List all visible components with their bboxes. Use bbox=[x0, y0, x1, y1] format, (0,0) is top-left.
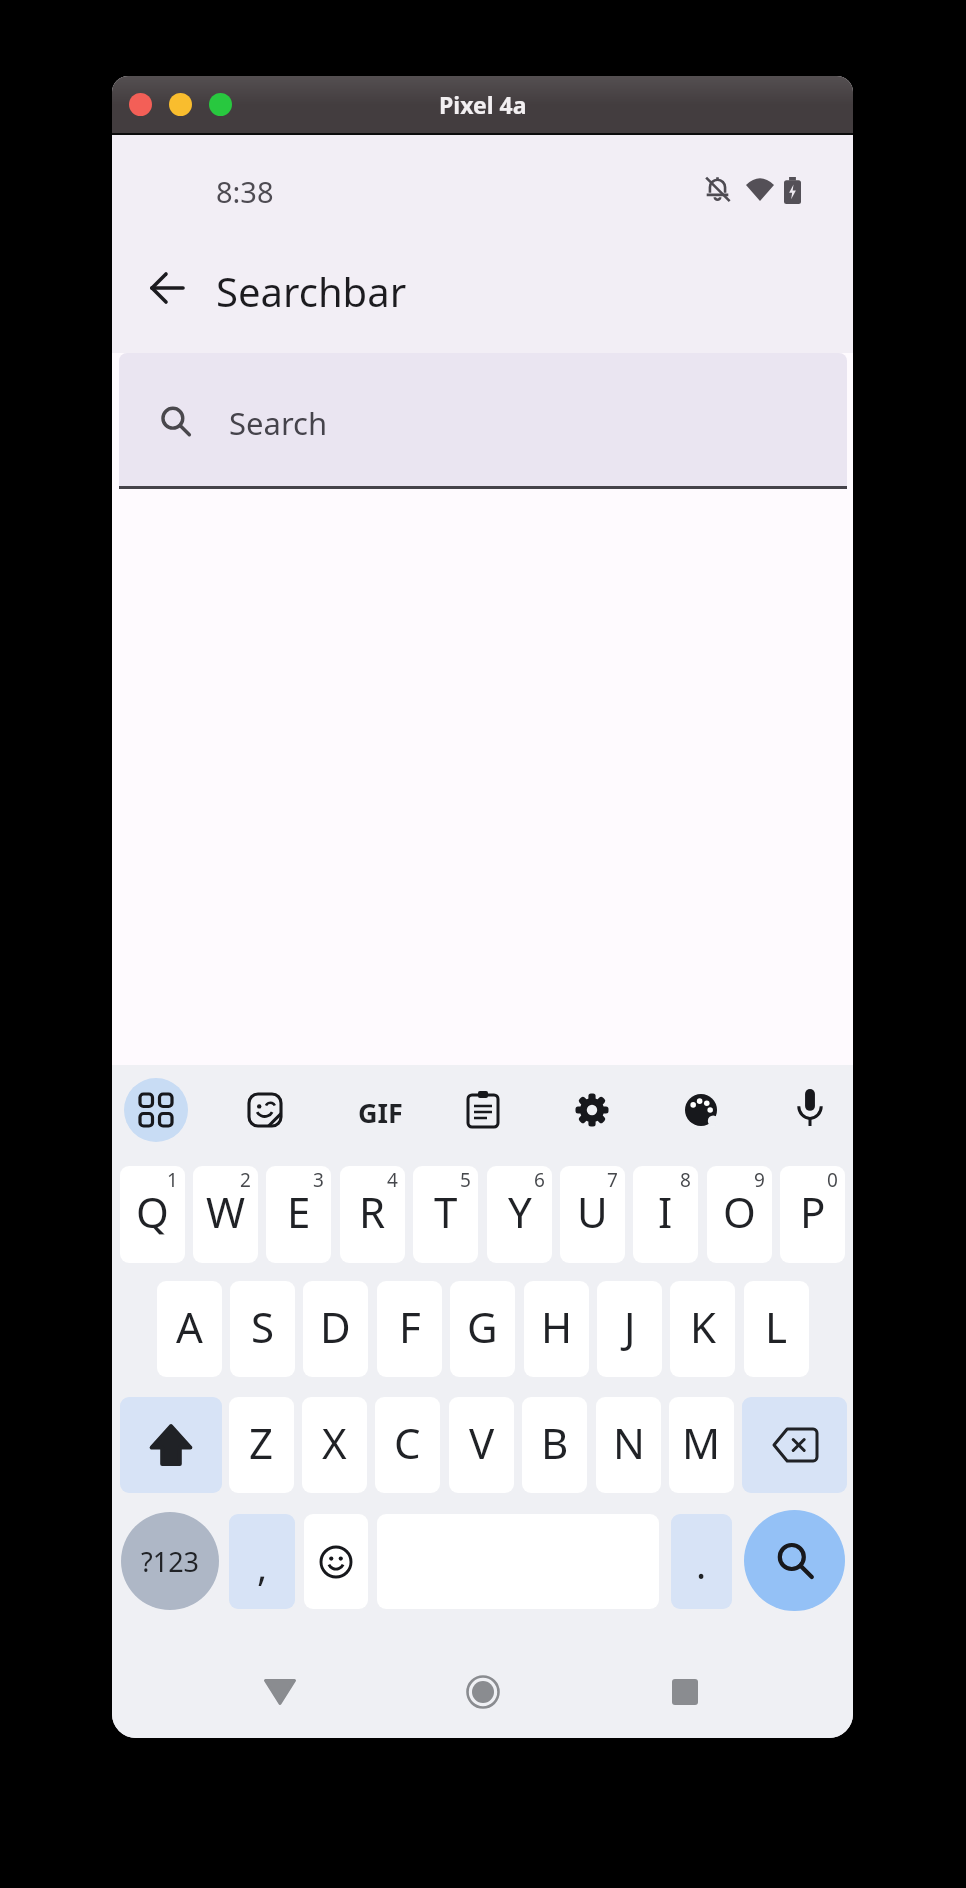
staticText: 7 bbox=[607, 1167, 618, 1193]
button[interactable]: S bbox=[230, 1281, 295, 1377]
staticText: T bbox=[434, 1183, 458, 1240]
button[interactable]: T bbox=[413, 1166, 478, 1263]
button[interactable] bbox=[169, 93, 192, 116]
button[interactable] bbox=[129, 93, 152, 116]
button[interactable] bbox=[793, 1089, 827, 1131]
button[interactable]: D bbox=[303, 1281, 368, 1377]
staticText: F bbox=[399, 1298, 421, 1355]
button[interactable] bbox=[304, 1514, 368, 1609]
button[interactable] bbox=[209, 93, 232, 116]
button[interactable]: J bbox=[597, 1281, 662, 1377]
staticText: Search bbox=[229, 402, 328, 444]
button[interactable]: ?123 bbox=[121, 1512, 219, 1610]
staticText: X bbox=[322, 1414, 347, 1471]
button[interactable]: L bbox=[744, 1281, 809, 1377]
button[interactable]: I bbox=[633, 1166, 698, 1263]
staticText: 8:38 bbox=[216, 172, 274, 211]
staticText: M bbox=[682, 1414, 721, 1471]
button[interactable]: GIF bbox=[358, 1094, 403, 1131]
staticText: ?123 bbox=[141, 1543, 200, 1580]
staticText: , bbox=[257, 1540, 268, 1592]
button[interactable]: N bbox=[596, 1397, 661, 1493]
button[interactable]: G bbox=[450, 1281, 515, 1377]
button[interactable] bbox=[672, 1679, 698, 1705]
button[interactable]: V bbox=[449, 1397, 514, 1493]
staticText: P bbox=[800, 1183, 826, 1240]
staticText: Pixel 4a bbox=[439, 89, 527, 120]
staticText: D bbox=[320, 1298, 351, 1355]
button[interactable] bbox=[466, 1675, 500, 1709]
button[interactable] bbox=[264, 1679, 296, 1705]
staticText: G bbox=[467, 1298, 498, 1355]
button[interactable]: Q bbox=[120, 1166, 185, 1263]
staticText: C bbox=[394, 1414, 421, 1471]
staticText: 2 bbox=[240, 1167, 251, 1193]
button[interactable]: K bbox=[670, 1281, 735, 1377]
button[interactable]: Z bbox=[229, 1397, 294, 1493]
staticText: K bbox=[690, 1298, 716, 1355]
button[interactable]: . bbox=[671, 1514, 732, 1609]
staticText: R bbox=[359, 1183, 386, 1240]
staticText: Y bbox=[508, 1183, 532, 1240]
staticText: 3 bbox=[313, 1167, 324, 1193]
button[interactable] bbox=[684, 1093, 718, 1127]
button[interactable] bbox=[124, 1078, 188, 1142]
button[interactable]: X bbox=[302, 1397, 367, 1493]
button[interactable]: F bbox=[377, 1281, 442, 1377]
staticText: 0 bbox=[827, 1167, 838, 1193]
button[interactable]: C bbox=[375, 1397, 440, 1493]
staticText: 4 bbox=[387, 1167, 398, 1193]
button[interactable]: W bbox=[193, 1166, 258, 1263]
button[interactable] bbox=[150, 274, 184, 302]
button[interactable]: U bbox=[560, 1166, 625, 1263]
staticText: U bbox=[577, 1183, 608, 1240]
button[interactable]: H bbox=[524, 1281, 589, 1377]
button[interactable]: P bbox=[780, 1166, 845, 1263]
staticText: Searchbar bbox=[216, 264, 407, 318]
button[interactable] bbox=[574, 1092, 610, 1128]
button[interactable]: E bbox=[266, 1166, 331, 1263]
button[interactable] bbox=[247, 1092, 283, 1128]
staticText: 8 bbox=[680, 1167, 691, 1193]
staticText: A bbox=[176, 1298, 203, 1355]
button[interactable]: A bbox=[157, 1281, 222, 1377]
staticText: W bbox=[206, 1183, 246, 1240]
staticText: 9 bbox=[754, 1167, 765, 1193]
button[interactable] bbox=[120, 1397, 222, 1493]
staticText: V bbox=[469, 1414, 495, 1471]
button[interactable]: R bbox=[340, 1166, 405, 1263]
staticText: J bbox=[624, 1298, 636, 1355]
staticText: . bbox=[696, 1538, 707, 1590]
staticText: S bbox=[251, 1298, 275, 1355]
button[interactable]: Search bbox=[119, 353, 847, 486]
staticText: 5 bbox=[460, 1167, 471, 1193]
staticText: Z bbox=[249, 1414, 274, 1471]
button[interactable]: O bbox=[707, 1166, 772, 1263]
button[interactable] bbox=[742, 1397, 847, 1493]
button[interactable]: , bbox=[229, 1514, 295, 1609]
button[interactable] bbox=[744, 1510, 845, 1611]
staticText: 1 bbox=[167, 1167, 178, 1193]
staticText: B bbox=[541, 1414, 569, 1471]
staticText: I bbox=[658, 1183, 673, 1240]
button[interactable]: B bbox=[522, 1397, 587, 1493]
staticText: N bbox=[613, 1414, 645, 1471]
staticText: E bbox=[287, 1183, 311, 1240]
staticText: O bbox=[723, 1183, 756, 1240]
staticText: Q bbox=[136, 1183, 169, 1240]
staticText: H bbox=[541, 1298, 573, 1355]
staticText: L bbox=[765, 1298, 788, 1355]
button[interactable]: Y bbox=[487, 1166, 552, 1263]
button[interactable] bbox=[465, 1090, 501, 1130]
staticText: 6 bbox=[534, 1167, 545, 1193]
button[interactable]: M bbox=[669, 1397, 734, 1493]
